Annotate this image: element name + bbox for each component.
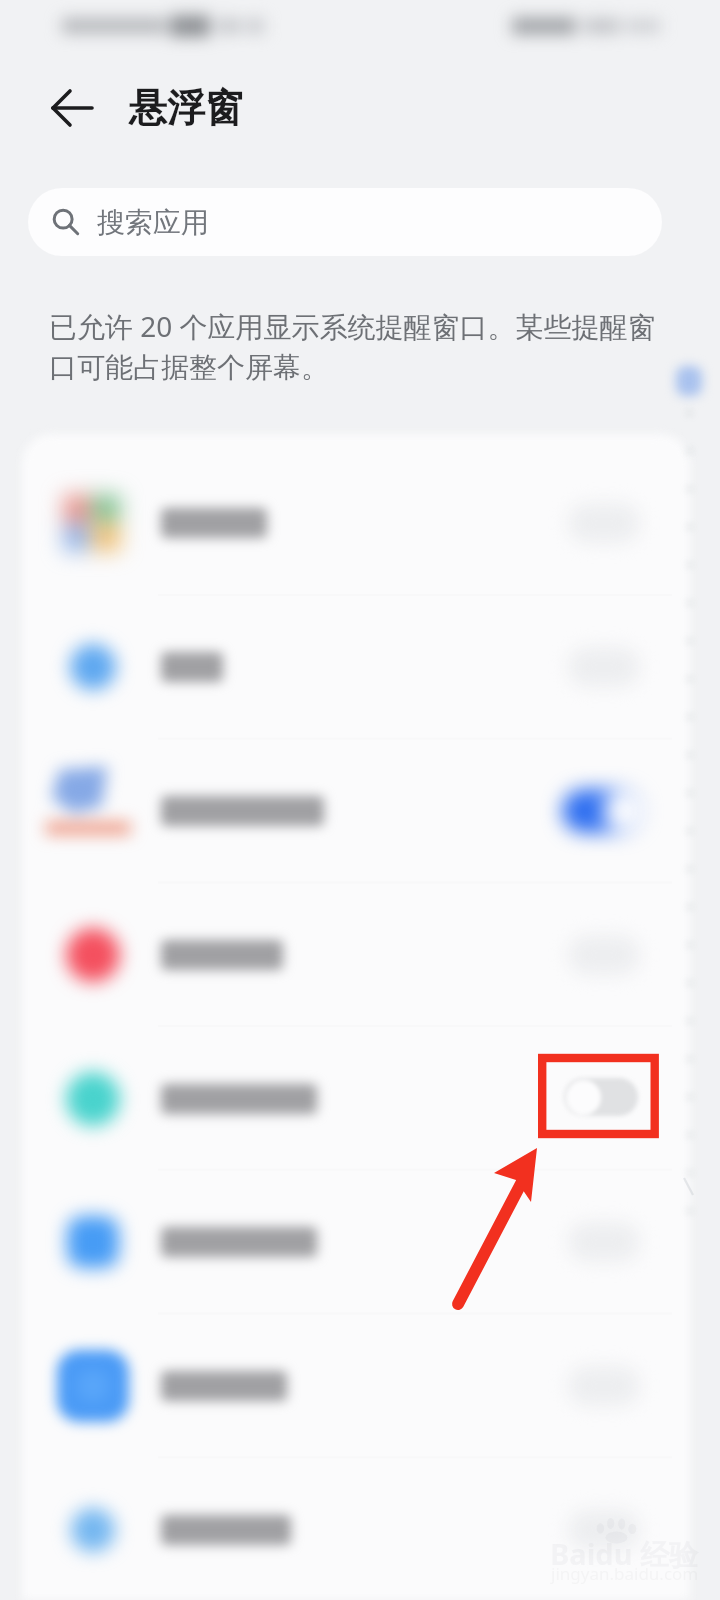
staticText: 悬浮窗: [129, 84, 243, 132]
staticText: 搜索应用: [97, 205, 209, 240]
button[interactable]: Switch off: [552, 635, 656, 699]
staticText: 已允许 20 个应用显示系统提醒窗口。某些提醒窗口可能占据整个屏幕。: [49, 307, 657, 385]
button[interactable]: Switch off: [552, 923, 656, 987]
button[interactable]: [26, 451, 672, 595]
staticText: jingyan.baidu.com: [551, 1562, 699, 1585]
button[interactable]: Switch off: [552, 1210, 656, 1274]
staticText: Baidu 经验: [550, 1534, 699, 1574]
button[interactable]: Switch off: [552, 491, 656, 555]
button[interactable]: Switch off: [552, 1067, 656, 1131]
button[interactable]: [26, 1314, 672, 1458]
button[interactable]: [26, 739, 672, 883]
button[interactable]: [26, 1170, 672, 1314]
button[interactable]: [26, 883, 672, 1027]
button[interactable]: [26, 595, 672, 739]
button[interactable]: Switch off: [552, 1354, 656, 1418]
button[interactable]: Back: [40, 75, 106, 141]
button[interactable]: [26, 1027, 672, 1171]
button[interactable]: [26, 1458, 672, 1600]
button[interactable]: 搜索应用: [28, 188, 662, 256]
button[interactable]: Switch on: [552, 779, 656, 843]
button[interactable]: Switch off: [552, 1498, 656, 1562]
